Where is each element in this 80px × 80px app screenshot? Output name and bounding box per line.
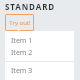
button[interactable]: Item 2 [5,47,74,59]
button[interactable]: Item 1 [5,35,74,47]
staticText: STANDARD [5,1,56,12]
staticText: Item 3 [11,66,33,76]
staticText: Item 2 [11,48,33,58]
button[interactable]: Item 3 [5,65,74,77]
button[interactable]: Try out! [5,14,34,31]
staticText: Try out! [9,19,31,27]
staticText: Item 1 [11,36,33,46]
